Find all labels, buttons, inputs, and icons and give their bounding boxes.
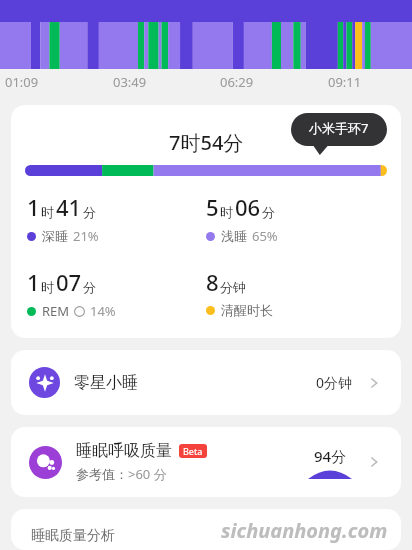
staticText: 分钟 xyxy=(220,279,246,295)
button[interactable]: 零星小睡 xyxy=(11,350,401,415)
staticText: 8 xyxy=(206,267,219,297)
button[interactable]: 睡眠质量分析 xyxy=(11,509,401,550)
staticText: >60 分 xyxy=(128,465,167,483)
staticText: 65% xyxy=(252,227,278,245)
other: More xyxy=(365,453,383,471)
button[interactable]: 睡眠呼吸质量 xyxy=(11,427,401,497)
staticText: 06:29 xyxy=(220,73,254,91)
staticText: 94分 xyxy=(314,446,347,466)
staticText: sichuanhong.com xyxy=(221,517,388,544)
staticText: 参考值： xyxy=(76,466,128,482)
staticText: 5 xyxy=(206,192,219,222)
staticText: 09:11 xyxy=(328,73,362,91)
staticText: 小米手环7 xyxy=(309,119,369,137)
staticText: 06 xyxy=(235,192,261,222)
staticText: 零星小睡 xyxy=(74,373,138,393)
staticText: 21% xyxy=(73,227,99,245)
staticText: 03:49 xyxy=(113,73,147,91)
staticText: 1 xyxy=(27,192,40,222)
staticText: 浅睡 xyxy=(221,228,247,244)
staticText: 7时54分 xyxy=(169,129,244,156)
staticText: 时 xyxy=(41,204,54,220)
staticText: 1 xyxy=(27,267,40,297)
button[interactable]: 7时54分 xyxy=(11,105,401,338)
staticText: 07 xyxy=(56,267,82,297)
other: More xyxy=(365,374,383,392)
staticText: 时 xyxy=(220,204,233,220)
staticText: 睡眠呼吸质量 xyxy=(76,441,172,461)
staticText: 睡眠质量分析 xyxy=(31,527,115,545)
staticText: 14% xyxy=(90,302,116,320)
staticText: 分 xyxy=(83,204,96,220)
staticText: 41 xyxy=(56,192,82,222)
staticText: 时 xyxy=(41,279,54,295)
staticText: 01:09 xyxy=(5,73,39,91)
staticText: Beta xyxy=(183,445,203,457)
staticText: REM xyxy=(42,302,70,320)
staticText: 分 xyxy=(83,279,96,295)
staticText: 分 xyxy=(262,204,275,220)
staticText: 0分钟 xyxy=(316,373,353,392)
staticText: 深睡 xyxy=(42,228,68,244)
staticText: 清醒时长 xyxy=(221,302,273,318)
